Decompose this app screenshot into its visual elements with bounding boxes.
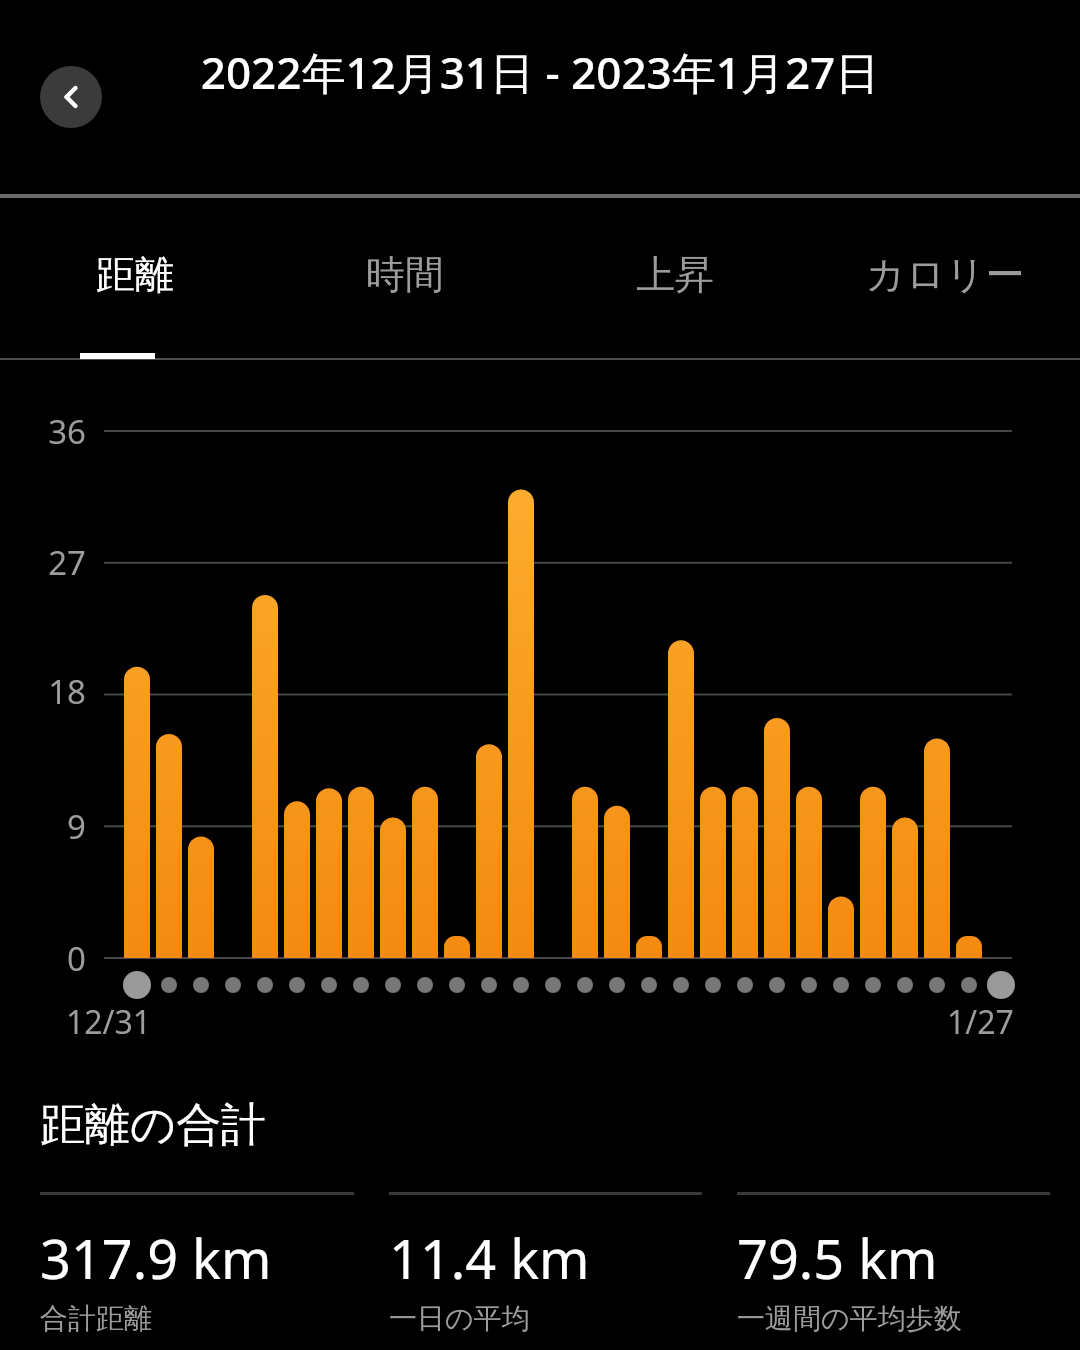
staticText: 2022年12月31日 - 2023年1月27日 <box>130 42 950 102</box>
staticText: カロリー <box>866 250 1025 299</box>
button[interactable]: 時間 <box>270 198 540 358</box>
button[interactable]: 上昇 <box>540 198 810 358</box>
button[interactable]: 79.5 km <box>737 1192 1050 1336</box>
staticText: 36 <box>0 409 86 454</box>
staticText: 9 <box>0 804 86 849</box>
button[interactable]: 11.4 km <box>389 1192 702 1336</box>
staticText: 一週間の平均歩数 <box>737 1301 962 1336</box>
staticText: 18 <box>0 669 86 714</box>
staticText: 317.9 km <box>40 1221 272 1295</box>
staticText: 0 <box>0 936 86 981</box>
staticText: 時間 <box>366 250 444 299</box>
staticText: 距離の合計 <box>40 1097 267 1154</box>
button[interactable]: 317.9 km <box>40 1192 354 1336</box>
staticText: 12/31 <box>66 1000 152 1044</box>
staticText: 上昇 <box>636 250 714 299</box>
button[interactable]: 距離 <box>0 198 270 358</box>
button[interactable]: 戻る <box>40 66 102 128</box>
staticText: 27 <box>0 540 86 585</box>
staticText: 79.5 km <box>737 1221 938 1295</box>
staticText: 11.4 km <box>389 1221 590 1295</box>
staticText: 1/27 <box>947 1000 1014 1044</box>
staticText: 一日の平均 <box>389 1301 530 1336</box>
staticText: 合計距離 <box>40 1301 152 1336</box>
button[interactable]: カロリー <box>810 198 1080 358</box>
staticText: 距離 <box>96 250 174 299</box>
